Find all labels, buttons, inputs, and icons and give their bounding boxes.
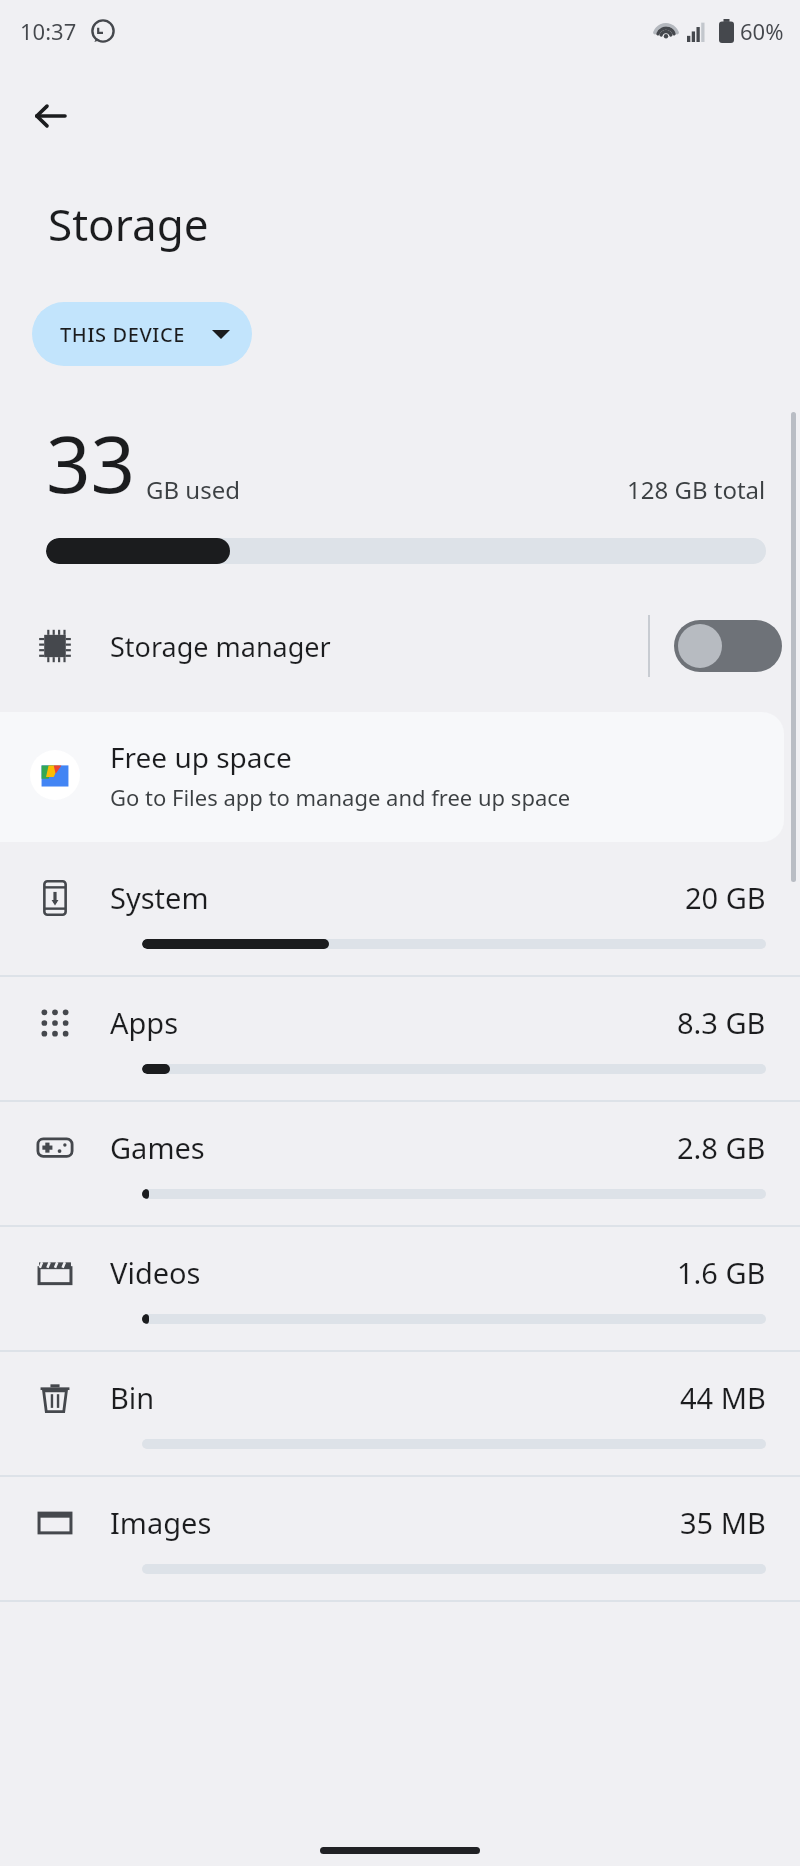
staticText: THIS DEVICE — [60, 321, 186, 348]
staticText: Storage — [48, 194, 209, 254]
staticText: System — [110, 878, 209, 917]
button[interactable]: THIS DEVICE — [32, 302, 252, 366]
staticText: Free up space — [110, 738, 292, 776]
staticText: Bin — [110, 1378, 155, 1417]
button[interactable]: Free up space — [0, 712, 784, 842]
button[interactable]: Games — [0, 1102, 800, 1227]
staticText: 44 MB — [680, 1378, 766, 1417]
staticText: GB used — [146, 473, 240, 506]
staticText: 33 — [46, 410, 136, 516]
staticText: Images — [110, 1503, 212, 1542]
button[interactable]: Storage manager toggle — [674, 620, 782, 672]
button[interactable]: Back — [18, 84, 82, 148]
staticText: 8.3 GB — [677, 1003, 766, 1042]
staticText: 35 MB — [680, 1503, 766, 1542]
button[interactable]: System — [0, 852, 800, 977]
staticText: Games — [110, 1128, 205, 1167]
staticText: Go to Files app to manage and free up sp… — [110, 782, 571, 812]
staticText: Storage manager — [110, 628, 331, 665]
staticText: Apps — [110, 1003, 179, 1042]
staticText: Videos — [110, 1253, 201, 1292]
staticText: 20 GB — [685, 878, 766, 917]
button[interactable]: Storage manager — [0, 598, 800, 694]
button[interactable]: Videos — [0, 1227, 800, 1352]
staticText: 1.6 GB — [677, 1253, 766, 1292]
staticText: 2.8 GB — [677, 1128, 766, 1167]
staticText: 128 GB total — [627, 473, 766, 506]
staticText: 60% — [740, 16, 784, 46]
staticText: 10:37 — [20, 16, 77, 46]
button[interactable]: Images — [0, 1477, 800, 1602]
button[interactable]: Bin — [0, 1352, 800, 1477]
button[interactable]: Apps — [0, 977, 800, 1102]
